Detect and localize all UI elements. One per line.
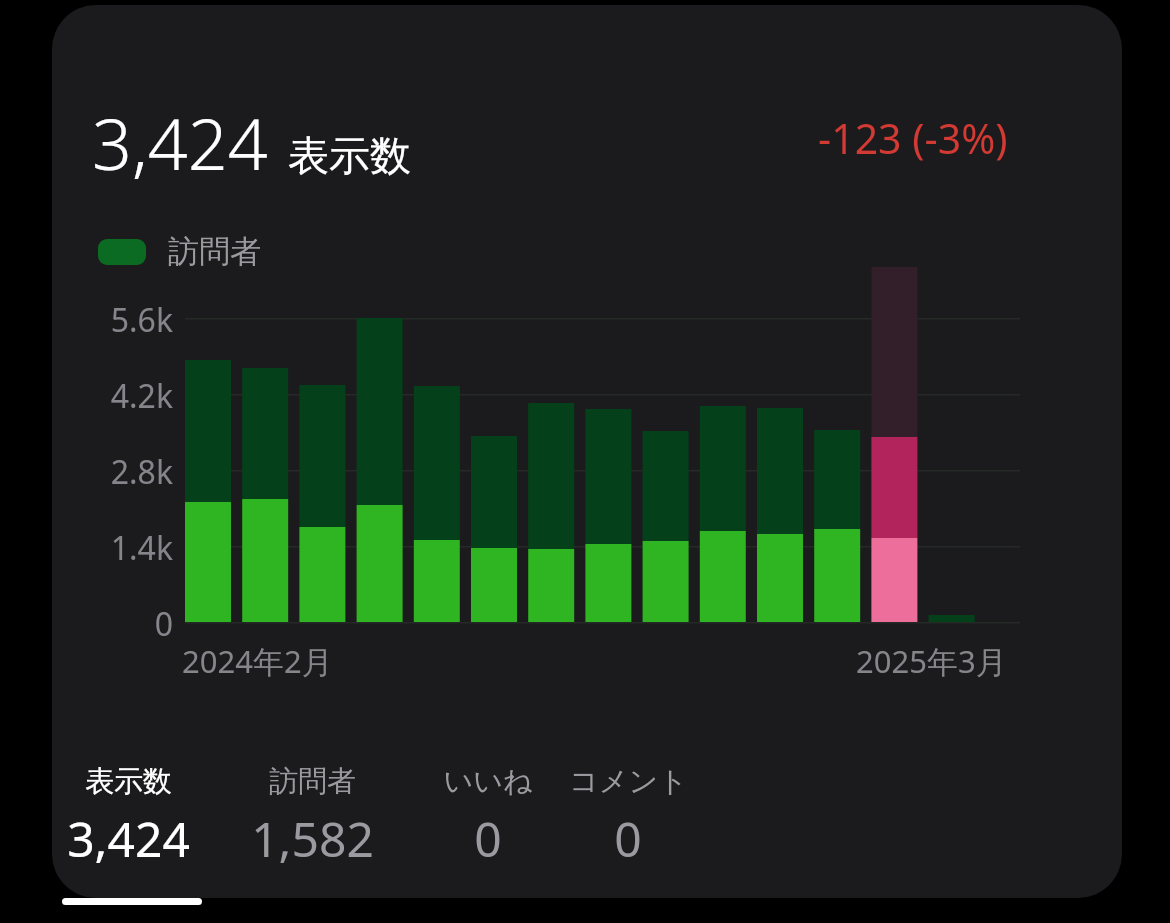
staticText: 3,424 — [67, 806, 190, 871]
button[interactable]: 表示数 — [48, 763, 208, 871]
button[interactable]: 訪問者 — [98, 232, 261, 271]
button[interactable] — [180, 260, 1020, 625]
staticText: 4.2k — [60, 374, 173, 418]
staticText: いいね — [443, 763, 533, 800]
staticText: 訪問者 — [269, 763, 356, 800]
staticText: 0 — [474, 806, 502, 871]
staticText: 表示数 — [85, 763, 172, 800]
button[interactable] — [52, 5, 1122, 898]
staticText: 5.6k — [60, 298, 173, 342]
staticText: 2024年2月 — [182, 640, 333, 682]
staticText: 3,424 — [92, 95, 268, 190]
staticText: 表示数 — [288, 131, 411, 183]
staticText: 訪問者 — [168, 232, 261, 271]
staticText: コメント — [569, 763, 688, 800]
button[interactable]: 訪問者 — [232, 763, 392, 871]
button[interactable]: いいね — [408, 763, 568, 871]
staticText: 2025年3月 — [856, 640, 1007, 682]
staticText: 1.4k — [60, 526, 173, 570]
staticText: 2.8k — [60, 450, 173, 494]
staticText: -123 (-3%) — [818, 110, 1008, 166]
staticText: 1,582 — [251, 806, 374, 871]
button[interactable]: コメント — [548, 763, 708, 871]
staticText: 0 — [614, 806, 642, 871]
staticText: 0 — [60, 602, 173, 646]
